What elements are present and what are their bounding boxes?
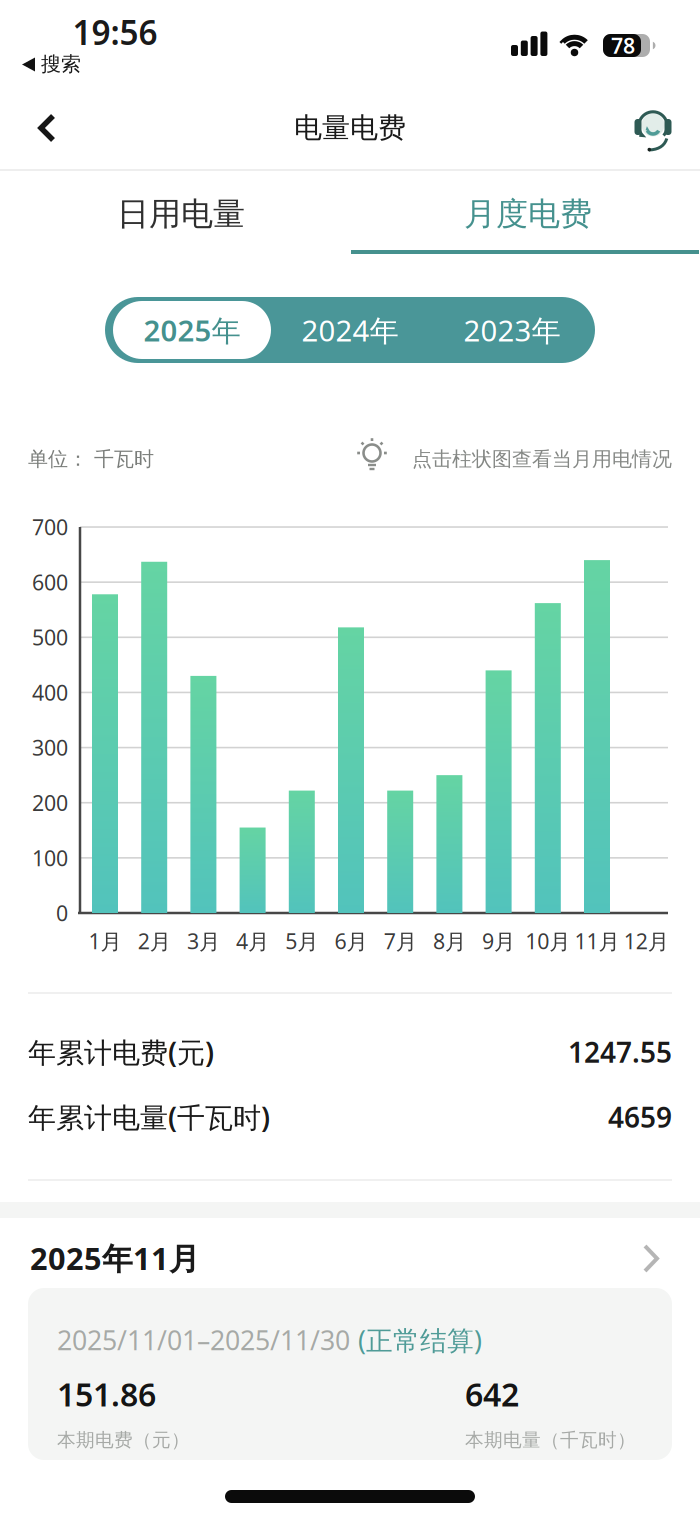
staticText: 本期电量（千瓦时） xyxy=(465,1428,636,1451)
staticText: 1月 xyxy=(88,927,121,955)
staticText: 2024年 xyxy=(301,310,398,349)
staticText: 11月 xyxy=(574,927,619,955)
staticText: 年累计电费(元) xyxy=(28,1033,214,1071)
staticText: 151.86 xyxy=(57,1373,156,1415)
staticText: 4月 xyxy=(236,927,269,955)
staticText: 月度电费 xyxy=(464,194,592,234)
staticText: 2月 xyxy=(138,927,171,955)
staticText: 642 xyxy=(465,1373,519,1415)
staticText: 100 xyxy=(32,844,68,872)
staticText: 点击柱状图查看当月用电情况 xyxy=(412,447,672,471)
staticText: 700 xyxy=(32,513,68,541)
staticText: 1247.55 xyxy=(568,1033,672,1071)
staticText: 2023年 xyxy=(463,310,560,349)
staticText: 9月 xyxy=(482,927,515,955)
staticText: 600 xyxy=(32,568,68,596)
staticText: 78 xyxy=(611,31,635,60)
staticText: 本期电费（元） xyxy=(57,1428,190,1451)
staticText: 3月 xyxy=(187,927,220,955)
staticText: 5月 xyxy=(285,927,318,955)
staticText: 10月 xyxy=(525,927,570,955)
staticText: 12月 xyxy=(624,927,669,955)
staticText: 4659 xyxy=(608,1098,672,1136)
staticText: 2025年 xyxy=(143,310,240,349)
staticText: 搜索 xyxy=(41,52,81,76)
staticText: 2025/11/01–2025/11/30 xyxy=(57,1322,350,1358)
staticText: 300 xyxy=(32,733,68,762)
staticText: (正常结算) xyxy=(358,1322,482,1358)
staticText: 单位： 千瓦时 xyxy=(28,447,154,471)
staticText: 6月 xyxy=(334,927,367,955)
staticText: 400 xyxy=(32,678,68,707)
staticText: 8月 xyxy=(433,927,466,955)
staticText: 日用电量 xyxy=(117,194,245,234)
staticText: 7月 xyxy=(384,927,417,955)
staticText: 200 xyxy=(32,789,68,817)
staticText: 19:56 xyxy=(72,10,157,54)
staticText: 2025年11月 xyxy=(30,1238,200,1278)
staticText: 0 xyxy=(56,899,68,927)
staticText: 500 xyxy=(32,623,68,651)
staticText: 电量电费 xyxy=(294,111,406,145)
staticText: 年累计电量(千瓦时) xyxy=(28,1098,270,1136)
